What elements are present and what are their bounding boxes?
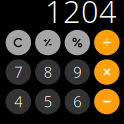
button[interactable]: Six (65, 89, 90, 114)
button[interactable]: Subtract (94, 89, 120, 114)
staticText: 7 (14, 62, 22, 82)
staticText: 8 (44, 62, 52, 82)
button[interactable]: Eight (35, 59, 61, 85)
button[interactable]: Four (6, 89, 31, 114)
button[interactable]: Five (35, 89, 61, 114)
button[interactable]: Seven (6, 59, 31, 85)
staticText: 5 (44, 92, 52, 111)
staticText: 4 (14, 92, 22, 111)
button[interactable]: Percent (65, 30, 90, 55)
button[interactable]: Clear (6, 30, 31, 55)
button[interactable]: Multiply (94, 59, 120, 85)
button[interactable]: Toggle sign (35, 30, 61, 55)
button[interactable]: Nine (65, 59, 90, 85)
staticText: 6 (73, 92, 81, 111)
staticText: 1204 (45, 0, 117, 31)
button[interactable]: Divide (94, 30, 120, 55)
staticText: 9 (73, 62, 81, 82)
